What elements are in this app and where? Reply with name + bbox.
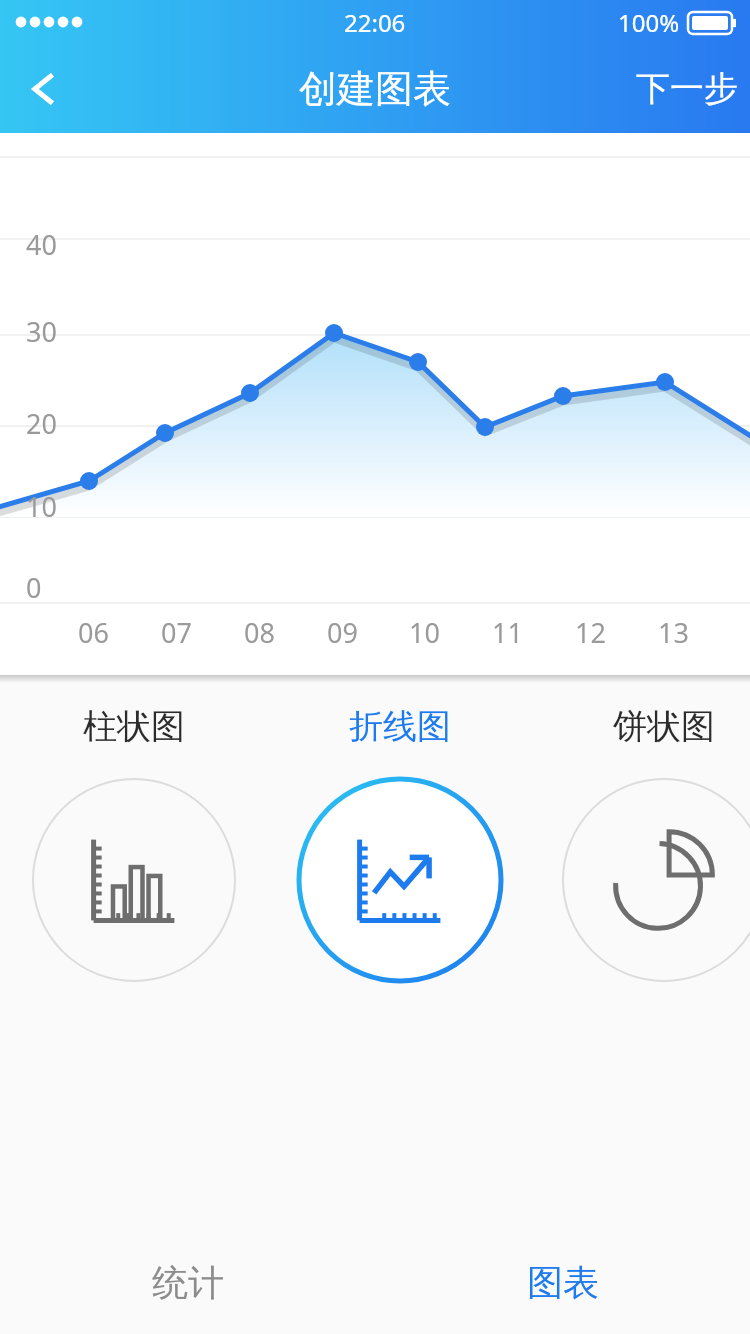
button[interactable]: Back xyxy=(0,44,90,133)
staticText: 柱状图 xyxy=(83,705,185,748)
staticText: 40 xyxy=(26,226,57,263)
staticText: 11 xyxy=(492,614,523,651)
staticText: 13 xyxy=(658,614,689,651)
button[interactable]: Pie chart xyxy=(544,705,750,984)
staticText: 0 xyxy=(26,569,42,606)
staticText: 07 xyxy=(161,614,192,651)
button[interactable]: 下一步 xyxy=(648,44,750,133)
button[interactable]: Line chart xyxy=(280,705,520,984)
staticText: 20 xyxy=(26,405,57,442)
button[interactable]: 图表 xyxy=(375,1230,750,1334)
staticText: 06 xyxy=(78,614,109,651)
button[interactable]: 统计 xyxy=(0,1230,375,1334)
staticText: 图表 xyxy=(527,1260,599,1305)
staticText: 22:06 xyxy=(344,6,406,39)
staticText: 08 xyxy=(244,614,275,651)
staticText: 10 xyxy=(26,488,57,525)
staticText: 10 xyxy=(409,614,440,651)
staticText: 100% xyxy=(618,6,680,39)
staticText: 饼状图 xyxy=(613,705,715,748)
staticText: 30 xyxy=(26,313,57,350)
staticText: 12 xyxy=(575,614,606,651)
staticText: 09 xyxy=(327,614,358,651)
staticText: 折线图 xyxy=(349,705,451,748)
staticText: 统计 xyxy=(152,1260,224,1305)
staticText: 下一步 xyxy=(636,67,738,110)
staticText: 创建图表 xyxy=(299,65,451,113)
button[interactable]: Bar chart xyxy=(14,705,254,984)
